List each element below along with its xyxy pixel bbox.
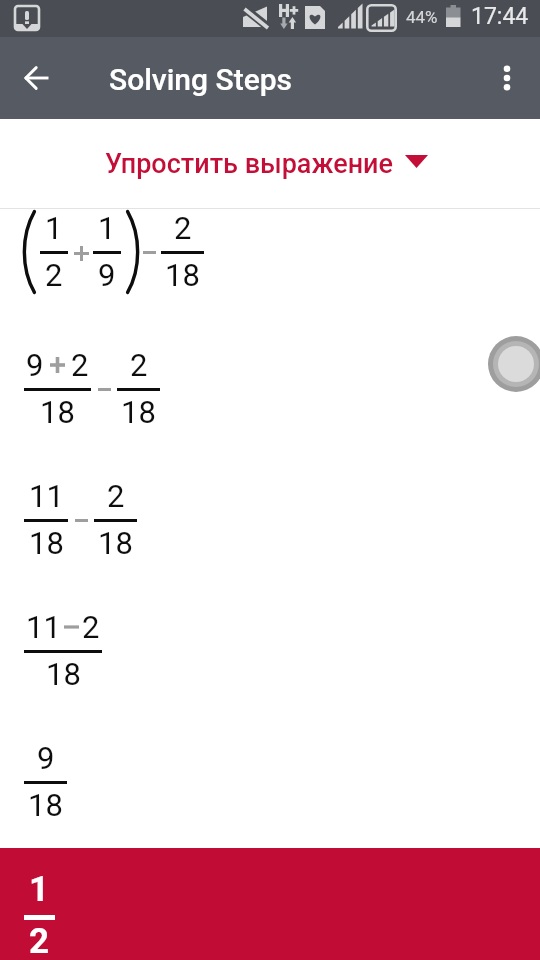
- staticText: 11: [26, 609, 61, 645]
- staticText: 2: [45, 257, 63, 293]
- staticText: 2: [71, 347, 89, 383]
- staticText: 18: [121, 394, 156, 430]
- staticText: 11: [29, 478, 64, 514]
- staticText: 2: [130, 347, 148, 383]
- staticText: 1: [98, 210, 116, 246]
- staticText: Упростить выражение: [105, 148, 393, 180]
- staticText: 1: [29, 869, 50, 909]
- staticText: 9: [26, 347, 44, 383]
- staticText: 18: [165, 257, 200, 293]
- staticText: 9: [98, 257, 116, 293]
- staticText: 2: [82, 609, 100, 645]
- staticText: 1: [45, 210, 63, 246]
- button[interactable]: Back: [8, 50, 64, 106]
- staticText: 2: [174, 210, 192, 246]
- staticText: 18: [29, 525, 64, 561]
- staticText: 18: [46, 656, 81, 692]
- button[interactable]: 1: [0, 848, 540, 960]
- staticText: 17:44: [471, 3, 529, 30]
- staticText: Solving Steps: [109, 62, 293, 97]
- staticText: 44%: [406, 7, 438, 27]
- button[interactable]: Упростить выражение: [0, 119, 540, 208]
- staticText: 9: [37, 740, 55, 776]
- button[interactable]: More options: [479, 50, 535, 106]
- staticText: 18: [40, 394, 75, 430]
- staticText: 2: [29, 921, 50, 960]
- staticText: 2: [107, 478, 125, 514]
- button[interactable]: Scroll: [498, 346, 534, 382]
- staticText: 18: [28, 787, 63, 823]
- staticText: 18: [98, 525, 133, 561]
